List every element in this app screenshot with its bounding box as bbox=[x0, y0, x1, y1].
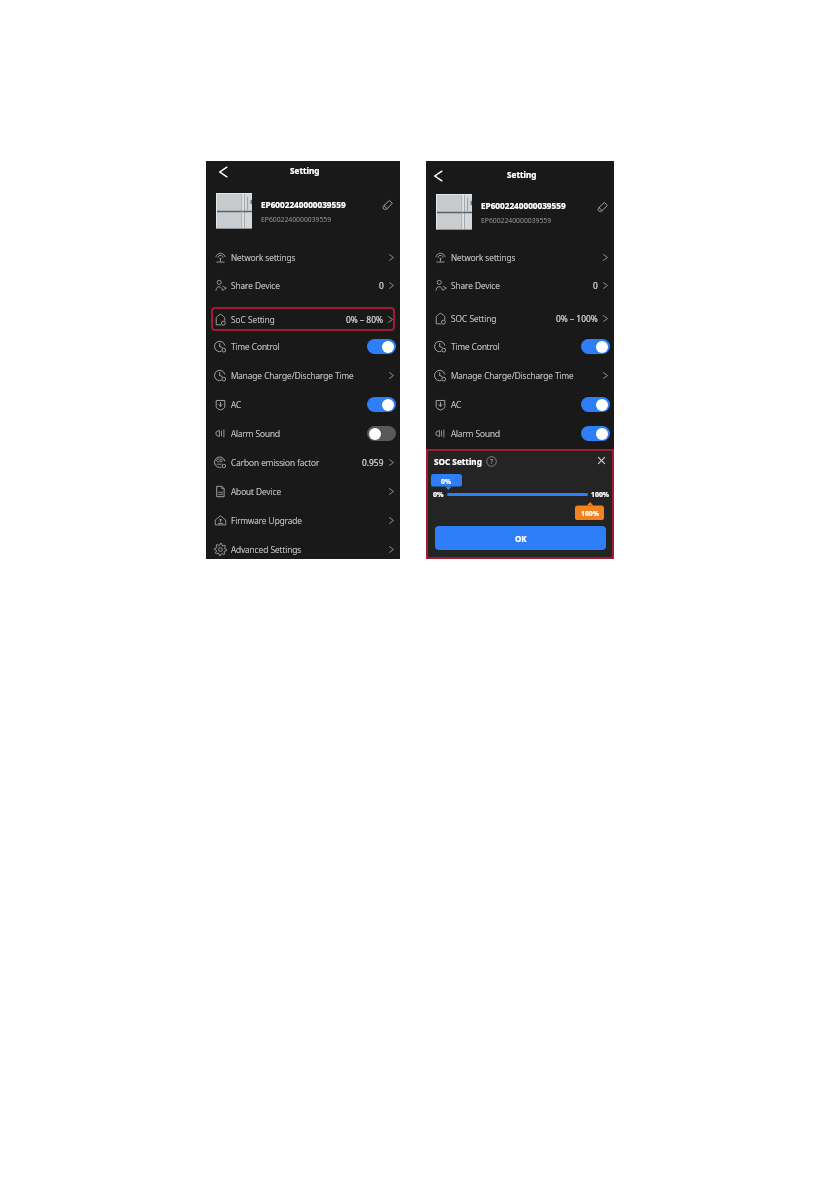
staticText: SOC Setting bbox=[451, 313, 497, 324]
staticText: Alarm Sound bbox=[231, 428, 281, 439]
button[interactable]: Close bbox=[596, 455, 607, 466]
staticText: Time Control bbox=[451, 341, 500, 352]
staticText: Manage Charge/Discharge Time bbox=[451, 370, 574, 381]
button[interactable]: Network settings bbox=[426, 243, 614, 272]
button[interactable]: Share Device bbox=[206, 271, 400, 300]
staticText: Time Control bbox=[231, 341, 280, 352]
button[interactable]: Time Control bbox=[206, 332, 400, 361]
staticText: EP6002240000039559 bbox=[481, 200, 566, 211]
button[interactable]: Back bbox=[217, 166, 229, 178]
staticText: 0.959 bbox=[362, 457, 384, 468]
button[interactable]: On bbox=[581, 397, 610, 412]
staticText: EP6002240000039559 bbox=[261, 199, 346, 210]
button[interactable]: OK bbox=[435, 526, 606, 550]
staticText: Share Device bbox=[451, 280, 500, 291]
staticText: 100% bbox=[581, 509, 599, 518]
staticText: Setting bbox=[290, 165, 320, 176]
staticText: Manage Charge/Discharge Time bbox=[231, 370, 354, 381]
button[interactable]: SOC Setting bbox=[426, 304, 614, 333]
staticText: 0% – 80% bbox=[346, 314, 383, 325]
staticText: 0% bbox=[433, 489, 444, 499]
staticText: SOC Setting bbox=[434, 456, 482, 467]
staticText: OK bbox=[515, 533, 527, 544]
staticText: Setting bbox=[507, 169, 537, 180]
staticText: EP6002240000039559 bbox=[481, 216, 552, 225]
staticText: EP6002240000039559 bbox=[261, 215, 332, 224]
button[interactable]: On bbox=[581, 426, 610, 441]
staticText: 0 bbox=[379, 280, 384, 291]
button[interactable]: Manage Charge/Discharge Time bbox=[426, 361, 614, 390]
button[interactable]: Carbon emission factor bbox=[206, 448, 400, 477]
staticText: 0 bbox=[593, 280, 598, 291]
staticText: AC bbox=[231, 399, 242, 410]
staticText: ? bbox=[490, 457, 494, 466]
staticText: SoC Setting bbox=[231, 314, 275, 325]
button[interactable]: AC bbox=[206, 390, 400, 419]
button[interactable]: On bbox=[367, 397, 396, 412]
staticText: Network settings bbox=[451, 252, 516, 263]
button[interactable]: Firmware Upgrade bbox=[206, 506, 400, 535]
staticText: Advanced Settings bbox=[231, 544, 302, 555]
staticText: Firmware Upgrade bbox=[231, 515, 302, 526]
button[interactable]: About Device bbox=[206, 477, 400, 506]
staticText: 0% bbox=[441, 477, 452, 486]
button[interactable]: Manage Charge/Discharge Time bbox=[206, 361, 400, 390]
button[interactable]: Time Control bbox=[426, 332, 614, 361]
button[interactable]: Edit name bbox=[596, 201, 608, 213]
button[interactable]: On bbox=[581, 339, 610, 354]
button[interactable]: Advanced Settings bbox=[206, 535, 400, 564]
button[interactable]: Edit name bbox=[381, 199, 393, 211]
button[interactable]: Share Device bbox=[426, 271, 614, 300]
staticText: Alarm Sound bbox=[451, 428, 501, 439]
staticText: About Device bbox=[231, 486, 282, 497]
staticText: Network settings bbox=[231, 252, 296, 263]
staticText: 0% – 100% bbox=[556, 313, 598, 324]
button[interactable]: SoC Setting bbox=[211, 307, 395, 331]
staticText: Share Device bbox=[231, 280, 280, 291]
button[interactable]: Help bbox=[486, 456, 497, 467]
staticText: 100% bbox=[591, 490, 610, 499]
button[interactable]: Alarm Sound bbox=[426, 419, 614, 448]
button[interactable]: Off bbox=[367, 426, 396, 441]
staticText: AC bbox=[451, 399, 462, 410]
button[interactable]: Back bbox=[432, 170, 444, 182]
button[interactable]: On bbox=[367, 339, 396, 354]
staticText: Carbon emission factor bbox=[231, 457, 320, 468]
button[interactable]: Alarm Sound bbox=[206, 419, 400, 448]
button[interactable]: Network settings bbox=[206, 243, 400, 272]
button[interactable]: AC bbox=[426, 390, 614, 419]
